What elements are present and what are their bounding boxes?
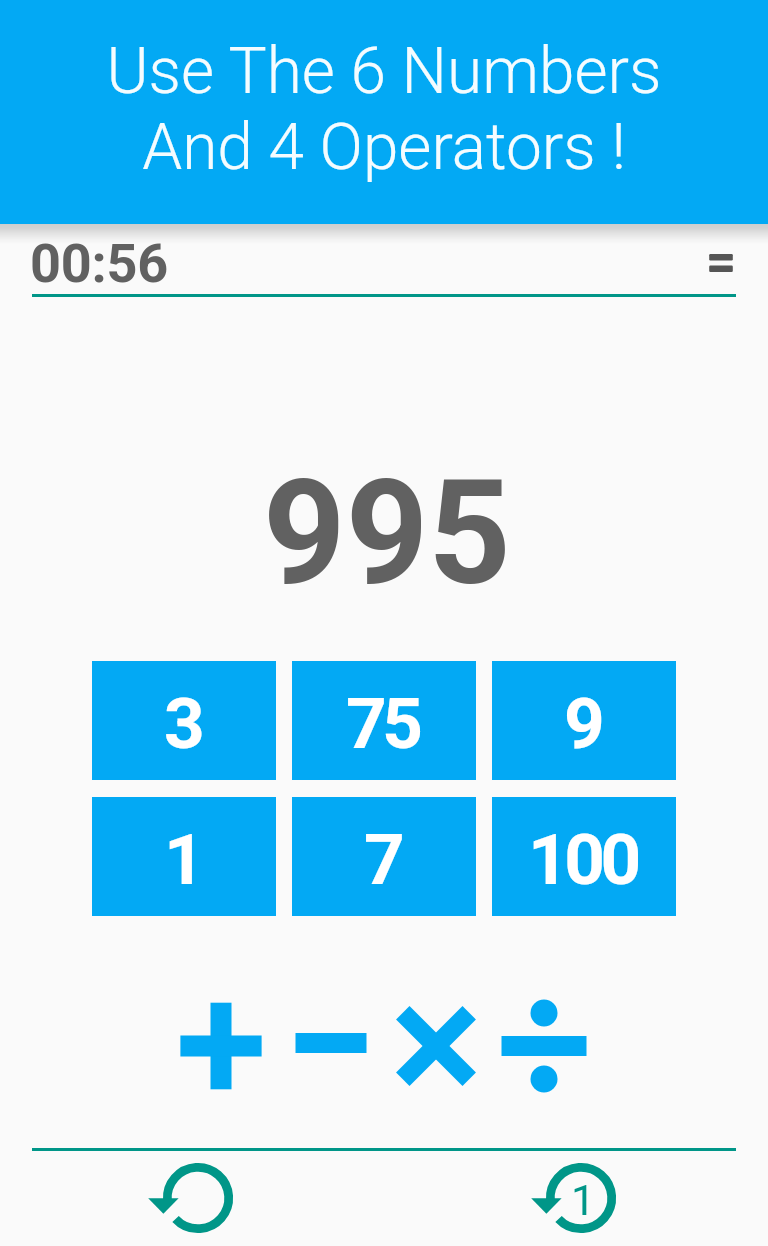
button[interactable]: Multiply <box>381 991 491 1101</box>
staticText: 1 <box>570 1175 596 1225</box>
staticText: 995 <box>263 449 511 618</box>
button[interactable]: Minus <box>276 988 386 1098</box>
staticText: 00:56 <box>30 232 169 295</box>
button[interactable]: Equals <box>693 235 749 291</box>
button[interactable]: 1 <box>92 797 276 916</box>
button[interactable]: 3 <box>92 661 276 780</box>
button[interactable]: 9 <box>492 661 676 780</box>
staticText: 7 <box>364 818 401 901</box>
staticText: 9 <box>564 682 601 765</box>
button[interactable]: 75 <box>292 661 476 780</box>
staticText: 100 <box>528 818 637 901</box>
staticText: 3 <box>164 682 201 765</box>
button[interactable]: Plus <box>166 991 276 1101</box>
button[interactable]: 7 <box>292 797 476 916</box>
staticText: 1 <box>164 818 201 901</box>
button[interactable]: 100 <box>492 797 676 916</box>
button[interactable]: Divide <box>489 991 599 1101</box>
button[interactable]: Undo one step <box>537 1154 625 1242</box>
button[interactable]: Restart <box>154 1154 242 1242</box>
staticText: 75 <box>346 682 419 765</box>
staticText: Use The 6 Numbers And 4 Operators ! <box>0 34 768 185</box>
